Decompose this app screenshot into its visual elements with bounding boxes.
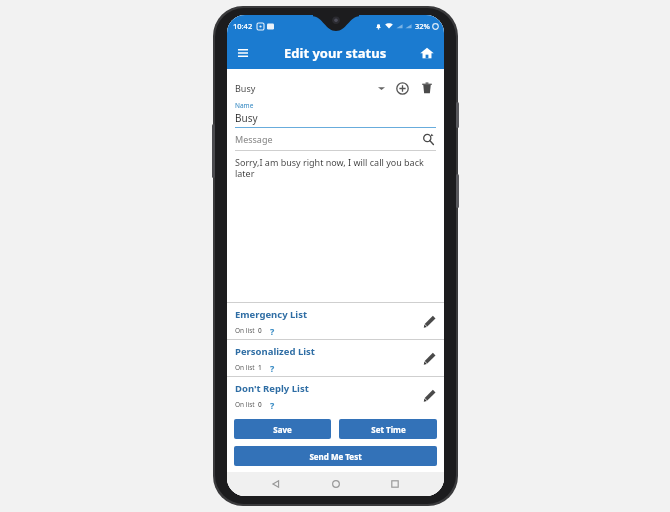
staticText: 0	[258, 400, 262, 409]
button[interactable]: Home	[325, 473, 347, 495]
staticText: Message	[235, 133, 273, 145]
staticText: Name	[235, 101, 254, 110]
staticText: Busy	[235, 82, 256, 94]
button[interactable]: Recent apps	[384, 473, 406, 495]
button[interactable]: Open navigation menu	[231, 41, 255, 65]
staticText: ?	[270, 399, 275, 409]
button[interactable]: Home	[415, 41, 439, 65]
button[interactable]: Don't Reply List	[227, 377, 444, 413]
staticText: ?	[270, 325, 275, 335]
staticText: Save	[273, 424, 292, 435]
staticText: 32%	[415, 21, 430, 31]
staticText: On list	[235, 363, 255, 372]
button[interactable]: Set Time	[339, 419, 437, 439]
staticText: On list	[235, 400, 255, 409]
staticText: 10:42	[233, 21, 253, 31]
button[interactable]: Add status	[391, 77, 413, 99]
button[interactable]: Help about Personalized List	[267, 362, 277, 372]
button[interactable]: Help about Emergency List	[267, 325, 277, 335]
button[interactable]: Search messages	[418, 129, 438, 149]
staticText: ?	[270, 362, 275, 372]
button[interactable]: Help about Don't Reply List	[267, 399, 277, 409]
button[interactable]: Save	[234, 419, 331, 439]
staticText: Sorry,I am busy right now, I will call y…	[235, 156, 436, 180]
staticText: Edit your status	[284, 44, 387, 62]
button[interactable]: Emergency List	[227, 303, 444, 339]
button[interactable]: Busy	[235, 75, 391, 101]
button[interactable]: Send Me Test	[234, 446, 437, 466]
button[interactable]: Back	[265, 473, 287, 495]
button[interactable]: Sorry,I am busy right now, I will call y…	[235, 156, 436, 180]
staticText: On list	[235, 326, 255, 335]
button[interactable]: Delete status	[416, 77, 438, 99]
staticText: Don't Reply List	[235, 382, 309, 395]
button[interactable]: Edit Don't Reply List	[418, 384, 440, 406]
staticText: Set Time	[371, 424, 406, 435]
button[interactable]: Personalized List	[227, 340, 444, 376]
staticText: Busy	[235, 111, 258, 125]
button[interactable]: Busy	[235, 111, 436, 125]
button[interactable]: Edit Emergency List	[418, 310, 440, 332]
staticText: Send Me Test	[309, 451, 362, 462]
staticText: 1	[258, 363, 262, 372]
staticText: Personalized List	[235, 345, 315, 358]
staticText: 0	[258, 326, 262, 335]
staticText: Emergency List	[235, 308, 308, 321]
button[interactable]: Edit Personalized List	[418, 347, 440, 369]
